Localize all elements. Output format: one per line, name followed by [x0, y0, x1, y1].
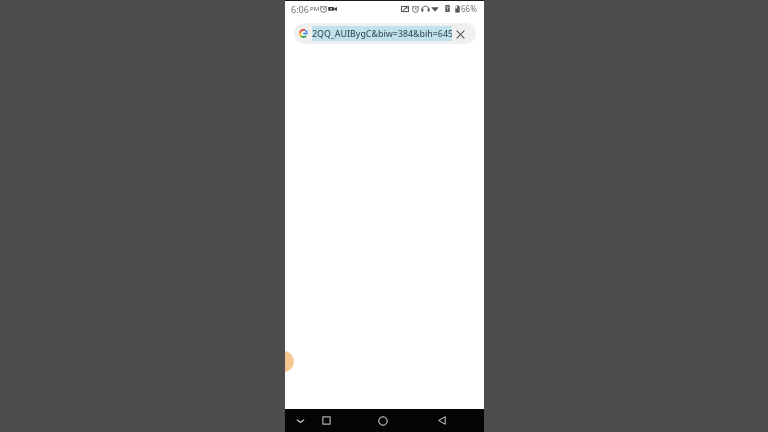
staticText: PM — [310, 5, 320, 13]
button[interactable]: Home — [371, 409, 395, 432]
staticText: 66% — [461, 3, 477, 14]
button[interactable]: Recents — [314, 409, 338, 432]
staticText: 2QQ_AUIBygC&biw=384&bih=645 — [312, 28, 452, 40]
button[interactable]: Hide keyboard — [288, 409, 312, 432]
button[interactable]: 2QQ_AUIBygC&biw=384&bih=645 — [294, 23, 476, 44]
button[interactable]: Back — [430, 409, 454, 432]
staticText: 6:06 — [291, 3, 309, 15]
button[interactable]: Clear — [452, 26, 468, 42]
